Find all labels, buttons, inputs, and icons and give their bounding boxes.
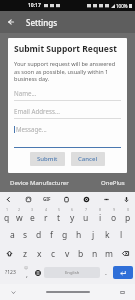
staticText: y (70, 212, 75, 224)
button[interactable]: . (100, 263, 112, 282)
staticText: 100% (116, 3, 128, 9)
staticText: ☺ (24, 265, 29, 270)
button[interactable]: Name... (14, 89, 121, 101)
staticText: Cancel (78, 155, 98, 163)
staticText: l (120, 229, 123, 241)
button[interactable]: 5 (52, 206, 65, 225)
button[interactable]: 9 (107, 206, 121, 225)
staticText: Submit (37, 155, 58, 163)
button[interactable]: v (60, 244, 74, 263)
button[interactable]: j (86, 225, 100, 244)
staticText: 9 (113, 207, 116, 212)
staticText: 3 (31, 207, 34, 212)
button[interactable]: ?123 (1, 263, 20, 282)
button[interactable]: h (72, 225, 86, 244)
button[interactable]: Settings (81, 194, 92, 205)
staticText: 2 (18, 207, 21, 212)
staticText: r (44, 212, 48, 224)
button[interactable]: 0 (121, 206, 135, 225)
staticText: 8 (99, 207, 102, 212)
button[interactable]: l (114, 225, 128, 244)
button[interactable]: 3 (26, 206, 39, 225)
button[interactable]: GIF (43, 196, 51, 202)
staticText: g (62, 229, 68, 241)
staticText: n (92, 248, 98, 260)
button[interactable]: Voice input (121, 194, 132, 205)
staticText: Email Address... (14, 107, 60, 115)
staticText: 7 (85, 207, 88, 212)
button[interactable]: Back (3, 194, 14, 205)
button[interactable]: Submit (30, 152, 65, 166)
button[interactable]: Clipboard (61, 194, 72, 205)
button[interactable]: Device Manufacturer (10, 179, 125, 187)
button[interactable]: m (102, 244, 116, 263)
staticText: 1 (6, 207, 9, 212)
staticText: d (36, 229, 42, 241)
button[interactable]: 4 (39, 206, 52, 225)
button[interactable]: Enter (113, 266, 133, 279)
staticText: , (26, 270, 28, 280)
staticText: Name... (14, 89, 37, 97)
button[interactable]: English (44, 267, 100, 278)
button[interactable]: 2 (13, 206, 26, 225)
button[interactable]: Home (46, 291, 90, 293)
staticText: ?123 (5, 269, 16, 276)
staticText: Message... (16, 125, 47, 133)
staticText: v (65, 248, 70, 260)
button[interactable]: Stickers (23, 194, 34, 205)
staticText: e (30, 212, 35, 224)
staticText: s (23, 229, 28, 241)
staticText: t (57, 212, 61, 224)
button[interactable]: a (6, 225, 19, 244)
button[interactable]: Shift (0, 244, 18, 263)
button[interactable]: Delete (116, 244, 135, 263)
button[interactable]: 6 (65, 206, 79, 225)
button[interactable]: Change language (32, 263, 44, 282)
staticText: w (16, 212, 23, 224)
button[interactable]: Cancel (71, 152, 105, 166)
button[interactable]: Email Address... (14, 107, 121, 119)
button[interactable]: Recents (117, 287, 127, 297)
button[interactable]: f (45, 225, 58, 244)
staticText: Submit Support Request (14, 43, 117, 55)
button[interactable]: 8 (93, 206, 107, 225)
button[interactable]: n (88, 244, 102, 263)
staticText: h (76, 229, 82, 241)
button[interactable]: k (100, 225, 114, 244)
staticText: Your support request will be answered as… (14, 60, 121, 83)
button[interactable]: d (32, 225, 45, 244)
button[interactable]: s (19, 225, 32, 244)
staticText: 0 (127, 207, 130, 212)
button[interactable]: g (58, 225, 72, 244)
button[interactable]: z (18, 244, 32, 263)
staticText: 6 (71, 207, 74, 212)
staticText: 5 (58, 207, 61, 212)
staticText: Device Manufacturer (10, 179, 69, 187)
staticText: u (83, 212, 89, 224)
staticText: English (65, 270, 80, 276)
button[interactable]: 1 (0, 206, 13, 225)
button[interactable]: c (46, 244, 60, 263)
button[interactable]: b (74, 244, 88, 263)
button[interactable]: x (32, 244, 46, 263)
staticText: OnePlus (101, 179, 125, 187)
staticText: m (105, 248, 113, 260)
button[interactable]: Hide keyboard (8, 287, 18, 297)
staticText: 4 (45, 207, 48, 212)
button[interactable]: More options (101, 194, 112, 205)
staticText: q (4, 212, 10, 224)
button[interactable]: Message... (14, 125, 121, 148)
staticText: c (51, 248, 56, 260)
staticText: i (99, 212, 102, 224)
staticText: o (111, 212, 117, 224)
staticText: b (78, 248, 84, 260)
staticText: 10:17 (28, 2, 41, 9)
staticText: a (10, 229, 15, 241)
staticText: j (92, 229, 95, 241)
staticText: z (23, 248, 27, 260)
staticText: p (125, 212, 131, 224)
button[interactable]: ☺ (20, 263, 32, 282)
staticText: . (105, 268, 107, 278)
button[interactable]: 7 (79, 206, 93, 225)
button[interactable]: Back (0, 11, 22, 33)
